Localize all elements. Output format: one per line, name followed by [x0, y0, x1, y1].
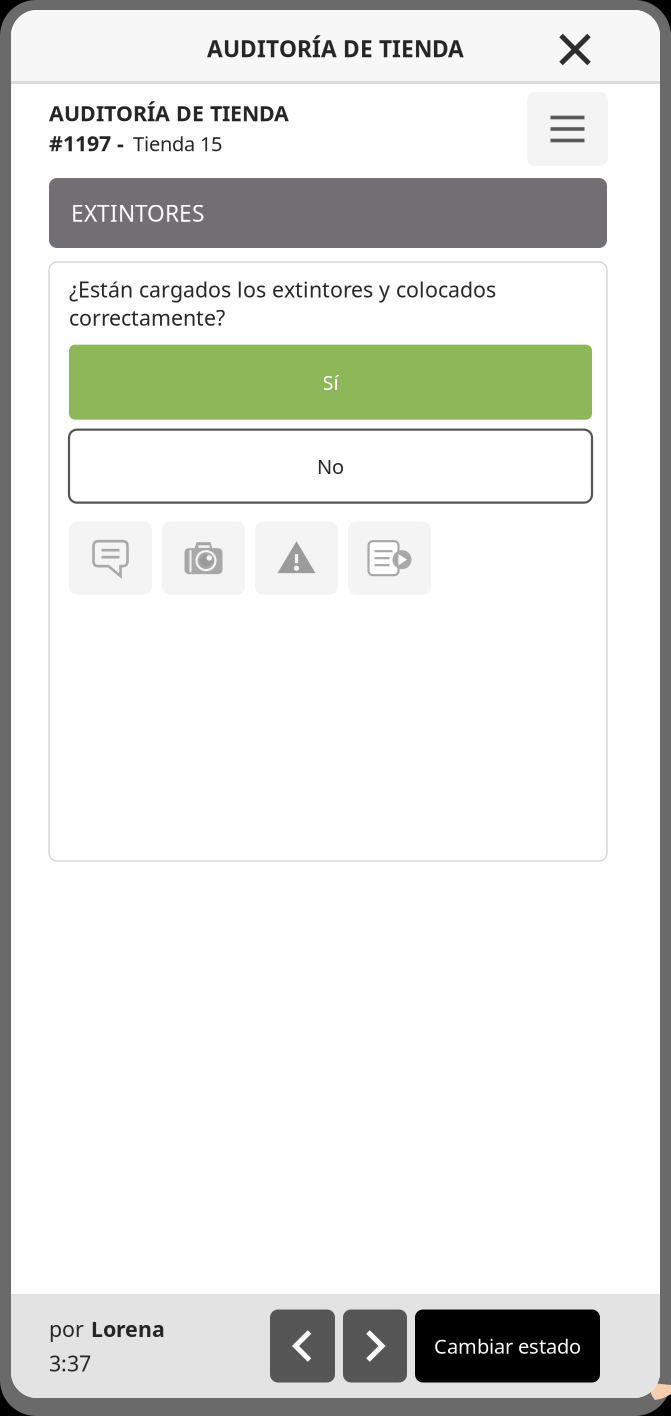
button[interactable]: Siguiente	[343, 1309, 407, 1382]
staticText: ¿Están cargados los extintores y colocad…	[69, 275, 496, 332]
button[interactable]: Sí	[69, 345, 592, 420]
staticText: AUDITORÍA DE TIENDA	[207, 33, 464, 63]
button[interactable]: Comentario	[69, 522, 152, 595]
button[interactable]: Menú	[527, 92, 608, 166]
button[interactable]: Cerrar	[539, 6, 611, 85]
button[interactable]: Foto	[162, 522, 245, 595]
staticText: Lorena	[91, 1315, 165, 1343]
staticText: No	[317, 453, 344, 479]
staticText: AUDITORÍA DE TIENDA	[49, 99, 289, 127]
staticText: Sí	[322, 369, 338, 395]
button[interactable]: Tarea	[348, 522, 431, 595]
button[interactable]: Incidencia	[255, 522, 338, 595]
staticText: #1197 -	[49, 129, 124, 157]
staticText: 3:37	[49, 1349, 91, 1377]
staticText: EXTINTORES	[71, 198, 204, 228]
staticText: Tienda 15	[133, 130, 222, 157]
button[interactable]: Anterior	[270, 1309, 335, 1382]
staticText: Cambiar estado	[434, 1333, 581, 1359]
staticText: por	[49, 1315, 84, 1343]
button[interactable]: No	[69, 430, 592, 503]
button[interactable]: Cambiar estado	[415, 1309, 600, 1382]
